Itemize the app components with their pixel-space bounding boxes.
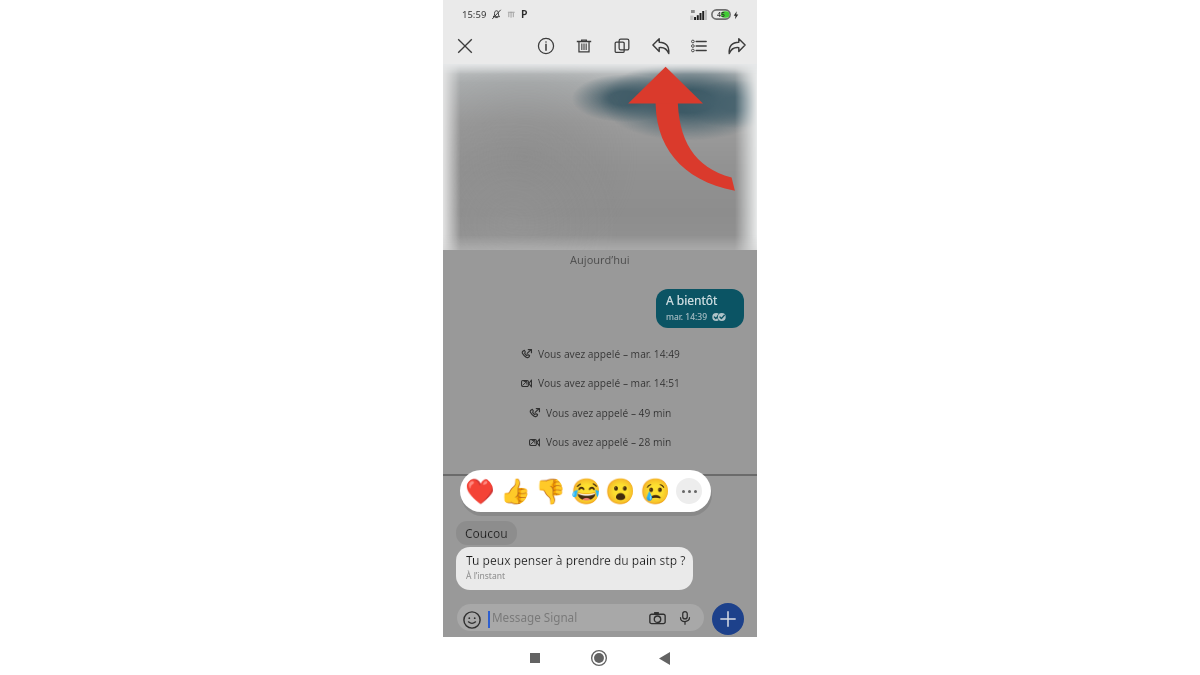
staticText: Aujourd’hui — [570, 252, 630, 267]
button[interactable]: Camera — [647, 608, 667, 628]
staticText: Message Signal — [492, 609, 578, 625]
button[interactable]: Vous avez appelé – 28 min — [443, 434, 757, 450]
button[interactable]: Thumbs down reaction — [535, 477, 563, 505]
staticText: 15:59 — [462, 8, 487, 21]
button[interactable]: Vous avez appelé – 49 min — [443, 405, 757, 421]
button[interactable]: Thumbs up reaction — [500, 477, 528, 505]
staticText: P — [521, 7, 528, 21]
staticText: Vous avez appelé – mar. 14:49 — [538, 347, 680, 361]
button[interactable]: Add attachment — [712, 603, 744, 635]
button[interactable]: Select — [684, 31, 714, 61]
staticText: Vous avez appelé – 28 min — [546, 435, 672, 449]
button[interactable]: More reactions — [676, 478, 702, 504]
button[interactable]: Reply — [646, 31, 676, 61]
staticText: Vous avez appelé – 49 min — [546, 406, 672, 420]
staticText: mar. 14:39 — [666, 311, 708, 323]
button[interactable]: Coucou — [456, 521, 517, 545]
button[interactable]: Forward — [722, 31, 752, 61]
staticText: Vous avez appelé – mar. 14:51 — [538, 376, 680, 390]
staticText: 😂 — [571, 477, 599, 505]
staticText: 👎 — [535, 477, 563, 505]
button[interactable]: Vous avez appelé – mar. 14:49 — [443, 346, 757, 362]
button[interactable]: Home — [586, 645, 612, 671]
button[interactable]: Message details — [531, 31, 561, 61]
button[interactable]: A bientôt — [656, 289, 744, 328]
button[interactable]: Voice message — [675, 608, 695, 628]
staticText: Coucou — [465, 525, 508, 541]
button[interactable]: Vous avez appelé – mar. 14:51 — [443, 375, 757, 391]
button[interactable]: Emoji keyboard — [457, 604, 704, 631]
button[interactable]: Emoji keyboard — [463, 611, 481, 629]
button[interactable]: Back — [651, 645, 677, 671]
button[interactable]: Copy — [607, 31, 637, 61]
button[interactable]: Recent apps — [522, 645, 548, 671]
button[interactable]: Sad reaction — [640, 477, 668, 505]
button[interactable]: Heart reaction — [465, 477, 493, 505]
button[interactable]: Close — [450, 31, 480, 61]
staticText: Tu peux penser à prendre du pain stp ? — [466, 552, 686, 568]
button[interactable]: Tu peux penser à prendre du pain stp ? — [456, 547, 693, 590]
staticText: ❤️ — [465, 477, 493, 505]
button[interactable]: Surprised reaction — [605, 477, 633, 505]
staticText: 👍 — [500, 477, 528, 505]
staticText: 😮 — [605, 477, 633, 505]
staticText: 45 — [717, 10, 726, 20]
button[interactable]: Delete — [569, 31, 599, 61]
staticText: 😢 — [640, 477, 668, 505]
staticText: À l’instant — [466, 570, 505, 582]
staticText: A bientôt — [666, 292, 718, 308]
button[interactable]: Laughing reaction — [571, 477, 599, 505]
